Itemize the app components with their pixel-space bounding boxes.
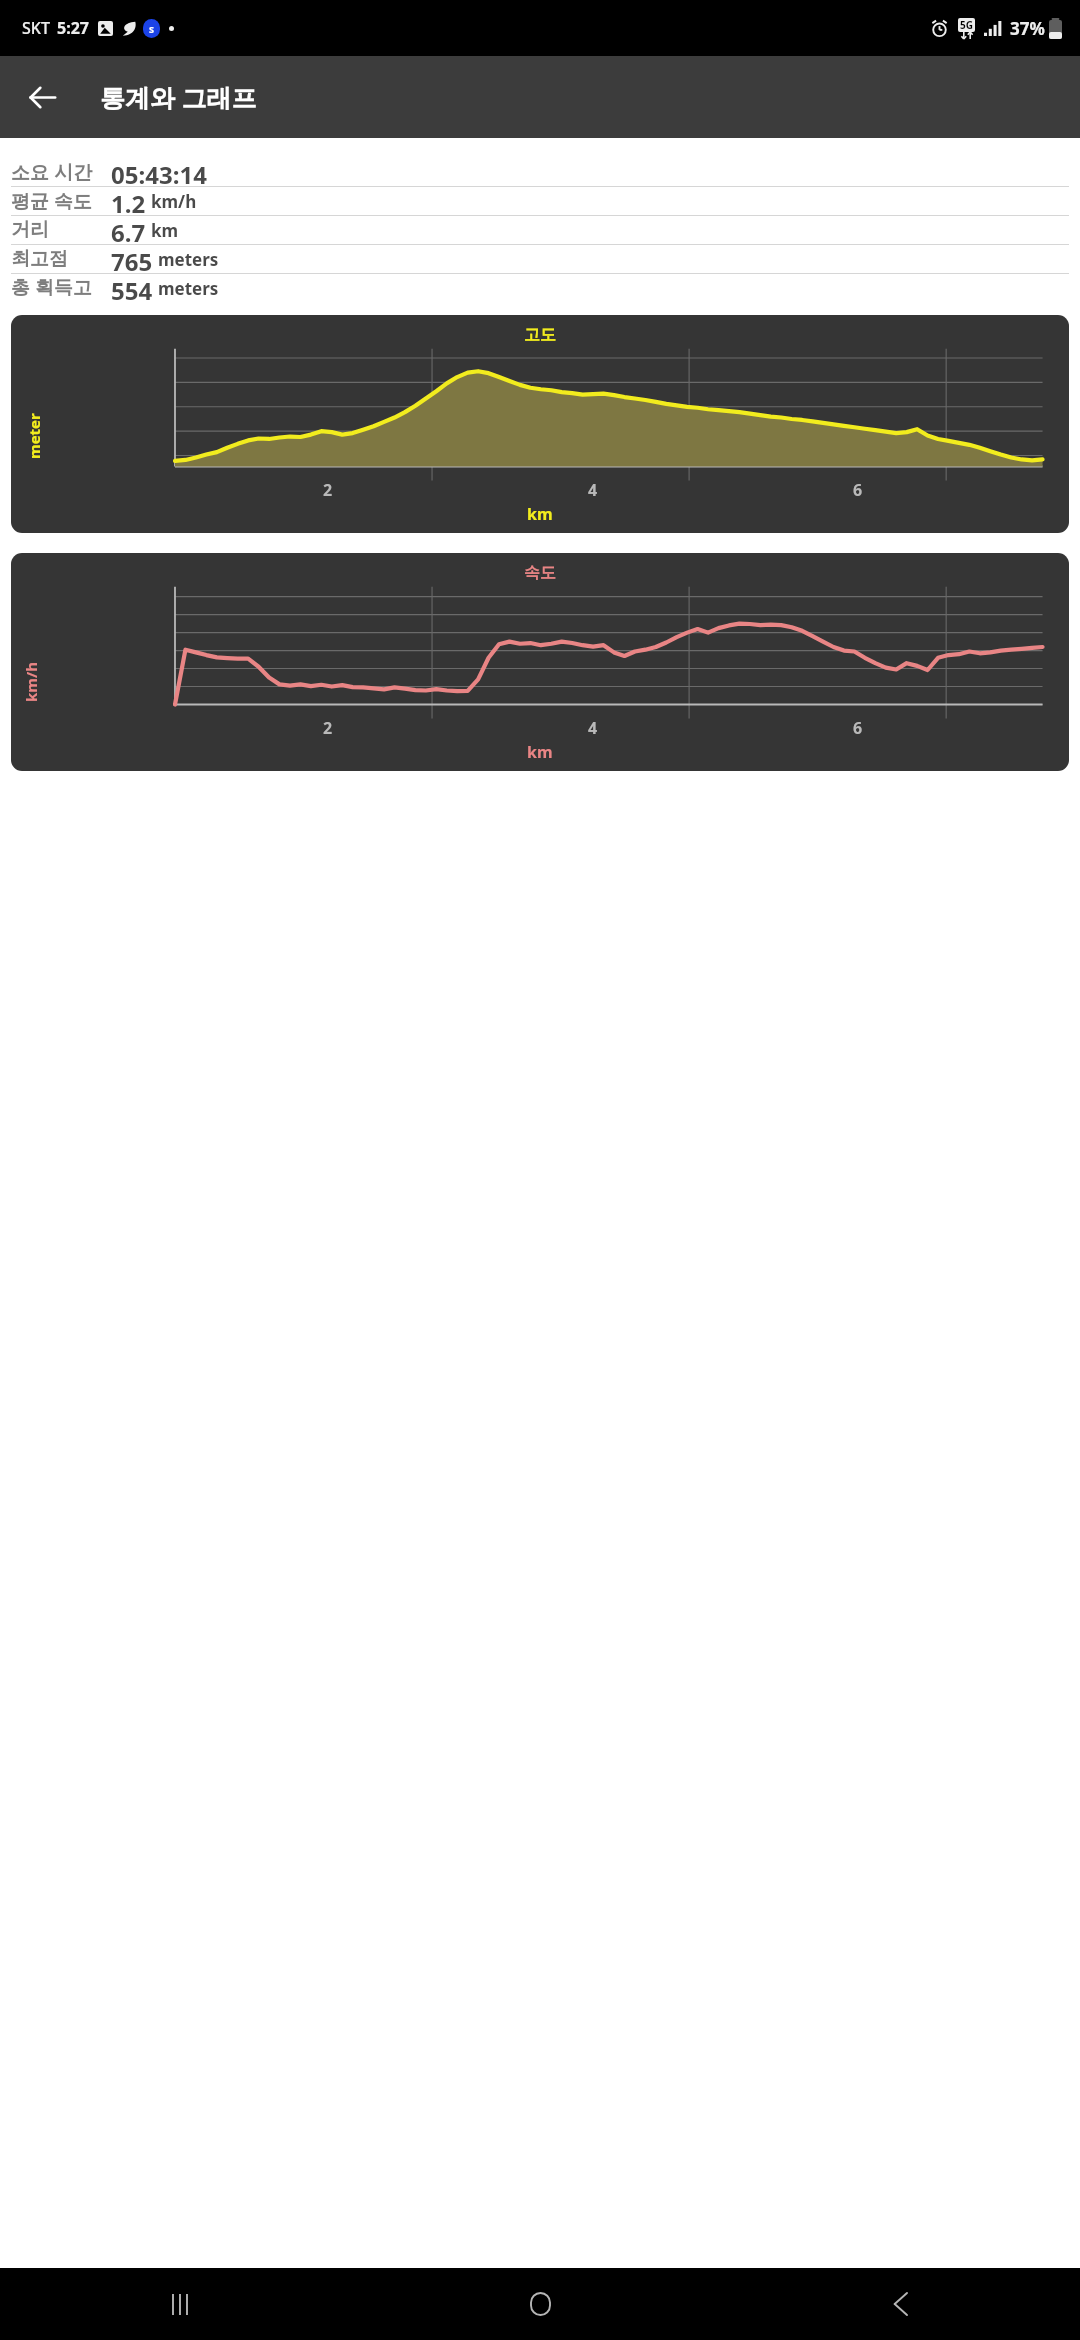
staticText: meters xyxy=(158,248,219,271)
staticText: km xyxy=(527,503,553,525)
staticText: 554 xyxy=(111,274,153,302)
button[interactable]: 소요 시간 xyxy=(11,158,1069,186)
staticText: 평균 속도 xyxy=(11,188,106,214)
staticText: 소요 시간 xyxy=(11,159,106,185)
staticText: 고도 xyxy=(524,325,556,345)
staticText: 6 xyxy=(853,717,863,739)
staticText: meter xyxy=(24,413,44,459)
staticText: SKT xyxy=(22,17,50,39)
staticText: S xyxy=(149,23,154,35)
button[interactable]: Back xyxy=(14,69,70,125)
button[interactable]: Home xyxy=(360,2268,720,2340)
staticText: 총 획득고도 xyxy=(11,274,106,302)
button[interactable]: 총 획득고도 xyxy=(11,274,1069,302)
button[interactable]: 속도 xyxy=(11,553,1069,771)
staticText: 4 xyxy=(588,479,598,501)
button[interactable]: 최고점 xyxy=(11,245,1069,273)
staticText: 거리 xyxy=(11,218,106,242)
staticText: 통계와 그래프 xyxy=(100,80,257,114)
button[interactable]: 고도 xyxy=(11,315,1069,533)
staticText: 2 xyxy=(323,479,333,501)
staticText: km xyxy=(527,741,553,763)
staticText: 5G xyxy=(960,18,973,32)
staticText: 05:43:14 xyxy=(111,158,207,186)
staticText: meters xyxy=(158,277,219,300)
staticText: km/h xyxy=(21,662,41,702)
button[interactable]: 거리 xyxy=(11,216,1069,244)
button[interactable]: Recents xyxy=(0,2268,360,2340)
staticText: 최고점 xyxy=(11,247,106,271)
staticText: 1.2 xyxy=(111,187,146,215)
staticText: 5:27 xyxy=(57,17,89,39)
staticText: 37% xyxy=(1010,17,1045,40)
staticText: 속도 xyxy=(524,563,556,583)
staticText: 765 xyxy=(111,245,153,273)
staticText: 6 xyxy=(853,479,863,501)
staticText: 2 xyxy=(323,717,333,739)
staticText: km/h xyxy=(151,190,197,213)
staticText: 4 xyxy=(588,717,598,739)
button[interactable]: 평균 속도 xyxy=(11,187,1069,215)
button[interactable]: Back xyxy=(720,2268,1080,2340)
staticText: 6.7 xyxy=(111,216,146,244)
staticText: km xyxy=(151,219,179,242)
